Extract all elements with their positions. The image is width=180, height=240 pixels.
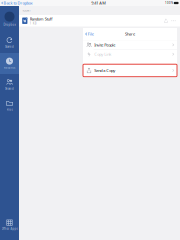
button[interactable]: Random Stuff [19,15,180,26]
button[interactable]: Starred [0,32,19,53]
button[interactable]: Dropbox [0,6,19,32]
staticText: Files [6,108,12,111]
button[interactable]: Back to Dropbox [0,0,32,6]
staticText: Starred [5,45,14,48]
button[interactable]: Office Apps [0,216,19,234]
staticText: Send a Copy [94,68,115,73]
button[interactable]: Send a Copy [83,64,177,77]
staticText: Shared [5,87,14,90]
button[interactable]: Recents [0,53,19,74]
staticText: 100% [165,1,173,5]
staticText: Dropbox [3,23,15,26]
button[interactable]: Copy Link [83,50,177,59]
staticText: 1 KB [30,22,37,25]
staticText: Back to Dropbox [3,0,32,6]
button[interactable]: Invite People [83,40,177,49]
staticText: Invite People [94,42,115,47]
button[interactable]: Shared [0,74,19,95]
staticText: File [88,31,94,37]
staticText: Random Stuff [30,16,53,21]
staticText: Office Apps [1,227,17,230]
staticText: Copy Link [94,51,111,57]
button[interactable]: File [83,28,94,40]
staticText: Share [125,31,135,37]
staticText: Recents [4,66,15,69]
button[interactable]: Files [0,95,19,116]
staticText: TODAY [22,9,31,12]
staticText: 9:41 AM [91,0,106,6]
